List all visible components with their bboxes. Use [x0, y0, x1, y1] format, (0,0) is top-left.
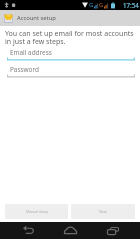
- staticText: You can set up email for most accounts i…: [5, 29, 136, 46]
- button[interactable]: Email address: [7, 48, 135, 61]
- staticText: G: [99, 1, 104, 9]
- button[interactable]: Home: [60, 222, 80, 239]
- staticText: Next: [99, 209, 107, 214]
- button[interactable]: Recent apps: [102, 222, 123, 239]
- button[interactable]: Account setup: [0, 10, 140, 26]
- button[interactable]: Password: [7, 65, 135, 78]
- staticText: 17:54: [123, 1, 139, 9]
- button[interactable]: Manual setup: [5, 204, 68, 219]
- staticText: Email address: [10, 48, 52, 57]
- button[interactable]: Back: [18, 222, 39, 239]
- button[interactable]: Next: [71, 204, 135, 219]
- staticText: Password: [10, 65, 39, 74]
- staticText: G: [89, 1, 94, 9]
- staticText: Manual setup: [26, 209, 48, 214]
- staticText: Account setup: [17, 14, 56, 22]
